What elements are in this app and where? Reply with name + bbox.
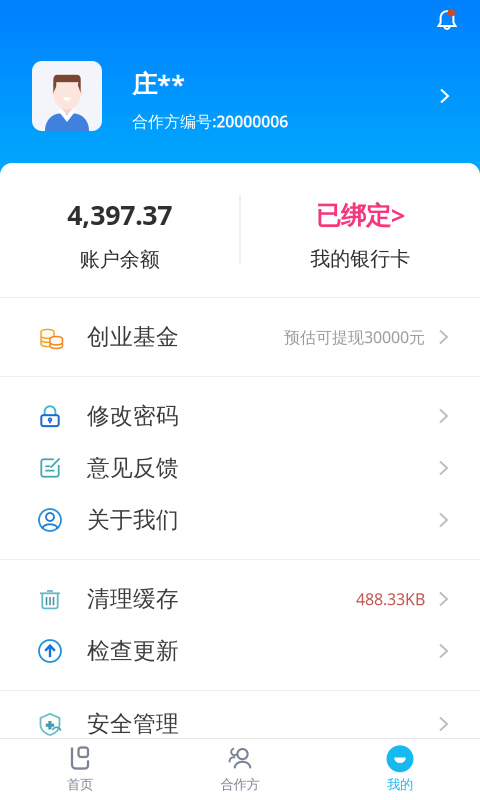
button[interactable]: 我的 xyxy=(320,738,480,800)
staticText: 意见反馈 xyxy=(87,454,179,482)
staticText: 创业基金 xyxy=(87,323,179,351)
button[interactable]: Notifications xyxy=(433,4,465,34)
button[interactable]: 关于我们 xyxy=(0,494,480,546)
button[interactable]: 合作方 xyxy=(160,738,320,800)
staticText: 安全管理 xyxy=(87,710,179,738)
staticText: 检查更新 xyxy=(87,637,179,665)
staticText: 清理缓存 xyxy=(87,585,179,613)
staticText: 合作方 xyxy=(220,776,259,793)
staticText: 首页 xyxy=(67,776,93,793)
staticText: 我的 xyxy=(387,776,413,793)
button[interactable]: 检查更新 xyxy=(0,625,480,677)
staticText: 庄** xyxy=(132,67,185,101)
staticText: 关于我们 xyxy=(87,506,179,534)
staticText: 合作方编号:20000006 xyxy=(132,111,288,132)
staticText: 修改密码 xyxy=(87,402,179,430)
button[interactable]: 4,397.37 xyxy=(0,163,239,297)
button[interactable]: 首页 xyxy=(0,738,160,800)
button[interactable]: 创业基金 xyxy=(0,311,480,363)
button[interactable]: 清理缓存 xyxy=(0,573,480,625)
button[interactable]: 修改密码 xyxy=(0,390,480,442)
staticText: 4,397.37 xyxy=(67,197,172,232)
staticText: 已绑定> xyxy=(316,198,405,232)
staticText: 488.33KB xyxy=(356,588,425,610)
button[interactable]: 庄** xyxy=(0,61,480,131)
staticText: 预估可提现30000元 xyxy=(284,326,425,348)
button[interactable]: 安全管理 xyxy=(0,698,480,750)
button[interactable]: 已绑定> xyxy=(240,163,480,297)
staticText: 账户余额 xyxy=(80,247,160,272)
button[interactable]: 意见反馈 xyxy=(0,442,480,494)
staticText: 我的银行卡 xyxy=(310,247,410,271)
